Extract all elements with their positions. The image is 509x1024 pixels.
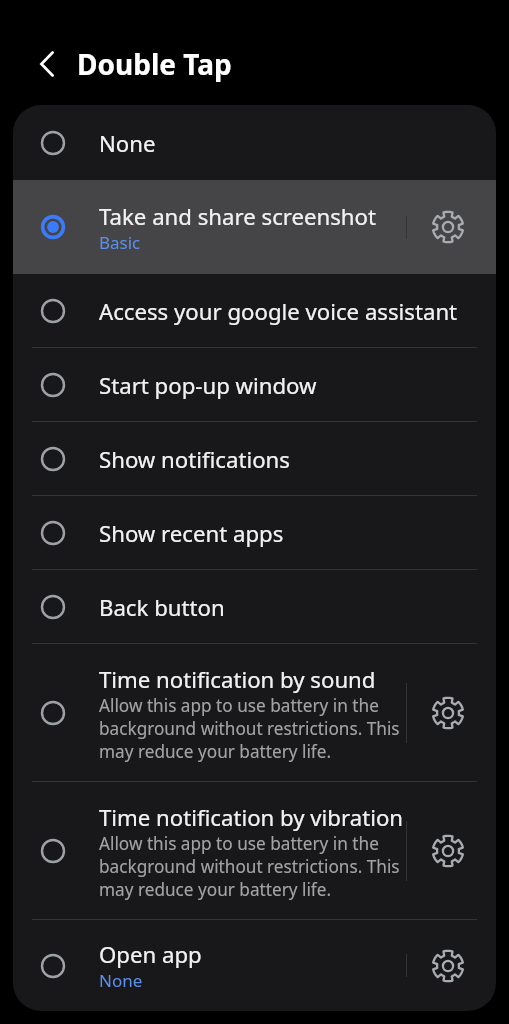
button[interactable]: None (13, 105, 496, 180)
staticText: None (99, 128, 156, 158)
button[interactable]: Back (24, 41, 70, 87)
staticText: Show recent apps (99, 518, 284, 548)
staticText: Basic (99, 231, 141, 254)
staticText: Open app (99, 939, 202, 969)
button[interactable]: Show recent apps (13, 496, 496, 570)
button[interactable]: Open app (13, 920, 496, 1011)
staticText: Time notification by vibration (99, 802, 404, 832)
staticText: None (99, 969, 143, 992)
button[interactable]: Show notifications (13, 422, 496, 496)
button[interactable]: Back button (13, 570, 496, 644)
button[interactable]: Time notification by vibration (13, 782, 496, 920)
staticText: Start pop-up window (99, 370, 317, 400)
button[interactable]: Take and share screenshot (13, 180, 496, 274)
button[interactable]: Access your google voice assistant (13, 274, 496, 348)
staticText: Allow this app to use battery in the bac… (99, 832, 405, 901)
staticText: Back button (99, 592, 225, 622)
staticText: Show notifications (99, 444, 290, 474)
button[interactable]: Time notification by sound (13, 644, 496, 782)
button[interactable]: Start pop-up window (13, 348, 496, 422)
staticText: Allow this app to use battery in the bac… (99, 694, 405, 763)
staticText: Time notification by sound (99, 664, 376, 694)
button[interactable]: Settings (413, 180, 483, 274)
staticText: Take and share screenshot (99, 201, 377, 231)
button[interactable]: Settings (413, 782, 483, 920)
button[interactable]: Settings (413, 920, 483, 1011)
button[interactable]: Settings (413, 644, 483, 782)
staticText: Double Tap (77, 45, 232, 83)
staticText: Access your google voice assistant (99, 296, 458, 326)
